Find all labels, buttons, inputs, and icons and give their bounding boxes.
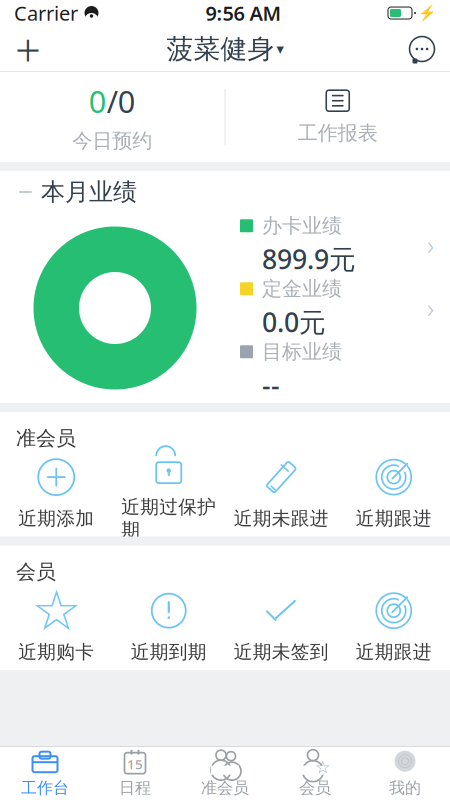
button[interactable]: 近期未跟进 [225,451,337,537]
staticText: 工作报表 [298,121,378,145]
staticText: 0.0元 [262,304,326,339]
button[interactable]: 近期到期 [112,584,225,670]
button[interactable]: Messages [394,27,450,71]
staticText: 15 [127,755,143,773]
staticText: 近期未签到 [234,641,329,664]
button[interactable]: 15 [90,746,180,800]
staticText: 近期添加 [18,507,94,530]
staticText: 近期购卡 [18,641,94,664]
staticText: 准会员 [201,778,249,798]
button[interactable]: 我的 [360,746,450,800]
button[interactable]: 近期未签到 [225,584,337,670]
staticText: /0 [107,81,136,122]
staticText: › [427,290,434,326]
button[interactable]: 近期跟进 [337,451,450,537]
staticText: ☆ [315,757,331,777]
button[interactable]: 办卡业绩 [230,213,450,276]
button[interactable]: 近期添加 [0,451,112,537]
staticText: 办卡业绩 [262,213,342,238]
staticText: 会员 [299,778,331,798]
staticText: 目标业绩 [262,339,342,364]
staticText: 899.9元 [262,241,356,276]
button[interactable]: 定金业绩 [230,276,450,339]
staticText: 准会员 [16,426,76,451]
staticText: 近期跟进 [356,507,432,530]
staticText: 日程 [119,778,151,798]
staticText: 今日预约 [72,129,152,153]
button[interactable]: 目标业绩 [230,339,450,402]
staticText: 近期跟进 [356,641,432,664]
staticText: ⚡ [418,5,436,21]
button[interactable]: 工作台 [0,746,90,800]
staticText: ▾ [276,41,283,57]
staticText: 菠菜健身 [166,33,274,65]
staticText: › [427,227,434,263]
staticText: -- [262,367,280,402]
button[interactable]: ☆ [0,584,112,670]
staticText: 0 [89,81,107,122]
button[interactable]: 近期跟进 [337,584,450,670]
staticText: 会员 [16,560,56,584]
button[interactable]: 准会员 [180,746,270,800]
staticText: 工作台 [21,778,69,798]
button[interactable]: 近期过保护期 [112,451,225,537]
button[interactable]: Add [0,27,56,71]
staticText: Carrier [14,0,78,26]
staticText: 近期过保护期 [121,496,216,541]
staticText: 定金业绩 [262,276,342,301]
button[interactable]: 工作报表 [225,72,450,162]
staticText: 近期未跟进 [234,507,329,530]
staticText: 9:56 AM [205,0,281,26]
staticText: 本月业绩 [41,177,137,207]
staticText: 我的 [389,778,421,798]
staticText: 近期到期 [131,641,207,664]
staticText: + [15,19,41,79]
button[interactable]: ☆ [270,746,360,800]
staticText: ☆ [31,579,81,642]
button[interactable]: 0 [0,72,224,162]
